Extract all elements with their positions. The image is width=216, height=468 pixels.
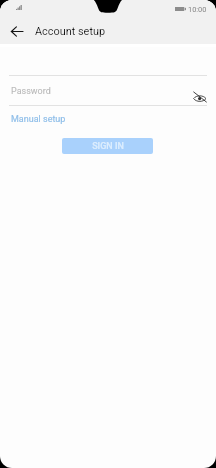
staticText: 10:00: [188, 5, 207, 14]
button[interactable]: Manual setup: [11, 114, 66, 125]
button[interactable]: SIGN IN: [62, 138, 153, 154]
button[interactable]: Show password: [190, 88, 210, 108]
button[interactable]: Password: [0, 76, 216, 105]
staticText: SIGN IN: [92, 141, 124, 152]
button[interactable]: Back: [4, 19, 29, 44]
staticText: Manual setup: [11, 114, 66, 125]
staticText: Password: [11, 86, 51, 97]
staticText: Account setup: [35, 25, 106, 38]
